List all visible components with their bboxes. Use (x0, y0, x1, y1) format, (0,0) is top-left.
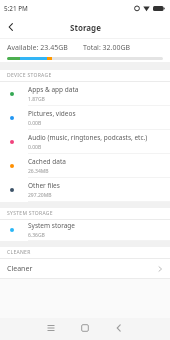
button[interactable]: Cleaner (0, 259, 170, 278)
button[interactable] (4, 20, 18, 34)
button[interactable] (108, 318, 130, 337)
button[interactable]: Apps & app data (0, 82, 170, 105)
staticText: 0.00B (28, 120, 42, 127)
staticText: 5:21 PM (4, 4, 28, 13)
staticText: System storage (28, 221, 76, 230)
staticText: Cleaner (7, 264, 33, 274)
staticText: 6.36GB (28, 232, 45, 239)
button[interactable] (40, 318, 62, 337)
staticText: Cached data (28, 157, 66, 166)
staticText: Apps & app data (28, 85, 79, 94)
staticText: 1.87GB (28, 96, 45, 103)
staticText: 0.00B (28, 144, 42, 151)
staticText: Pictures, videos (28, 109, 76, 118)
button[interactable]: Other files (0, 178, 170, 201)
staticText: Available: 23.45GB (7, 43, 68, 53)
button[interactable]: Pictures, videos (0, 106, 170, 129)
staticText: DEVICE STORAGE (7, 72, 52, 79)
button[interactable]: Cached data (0, 154, 170, 177)
staticText: Storage (70, 22, 101, 33)
staticText: Other files (28, 181, 60, 190)
staticText: 26.34MB (28, 168, 49, 175)
button[interactable]: Audio (music, ringtones, podcasts, etc.) (0, 130, 170, 153)
button[interactable] (74, 318, 96, 337)
staticText: SYSTEM STORAGE (7, 210, 53, 217)
staticText: Audio (music, ringtones, podcasts, etc.) (28, 133, 148, 142)
staticText: 297.20MB (28, 192, 52, 199)
staticText: Total: 32.00GB (83, 43, 131, 53)
staticText: CLEANER (7, 249, 31, 256)
button[interactable]: System storage (0, 220, 170, 240)
